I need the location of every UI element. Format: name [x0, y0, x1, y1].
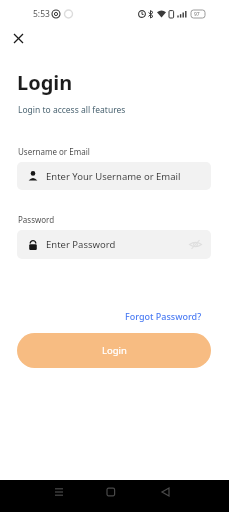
button[interactable] [10, 30, 26, 46]
staticText: Login to access all features [18, 104, 126, 116]
staticText: Forgot Password? [125, 310, 202, 322]
staticText: 5:53 [33, 8, 50, 20]
staticText: Enter Your Username or Email [46, 170, 181, 183]
staticText: Login [102, 344, 127, 357]
button[interactable]: Login [17, 333, 211, 368]
button[interactable]: Enter Your Username or Email [17, 162, 211, 190]
staticText: Username or Email [18, 146, 90, 157]
staticText: 97 [194, 11, 200, 18]
staticText: Password [18, 214, 55, 225]
staticText: Enter Password [46, 238, 116, 251]
staticText: Login [17, 69, 73, 96]
button[interactable]: Forgot Password? [125, 310, 202, 322]
button[interactable]: Enter Password [17, 230, 211, 259]
